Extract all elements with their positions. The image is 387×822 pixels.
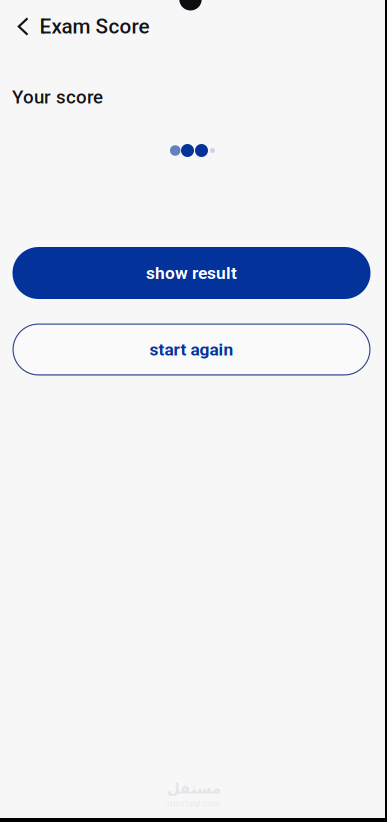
staticText: start again — [149, 339, 233, 360]
staticText: Your score — [12, 86, 103, 108]
button[interactable]: show result — [12, 247, 370, 299]
staticText: show result — [146, 263, 237, 283]
button[interactable]: start again — [12, 323, 370, 375]
staticText: مستقل — [166, 780, 220, 797]
staticText: mostaql.com — [167, 798, 220, 809]
staticText: Exam Score — [39, 14, 149, 39]
button[interactable]: Back to Exam Score — [0, 11, 163, 45]
